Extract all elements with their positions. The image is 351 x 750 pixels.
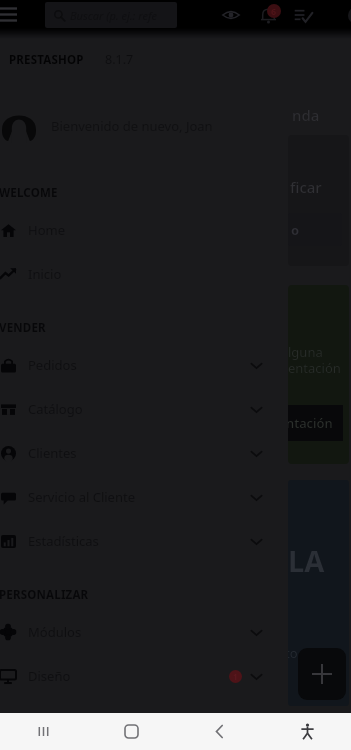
staticText: Home	[28, 221, 65, 239]
button[interactable]: Open navigation menu	[0, 0, 34, 30]
staticText: entación	[288, 359, 341, 377]
staticText: o	[291, 221, 300, 239]
staticText: 1	[233, 671, 238, 682]
button[interactable]: Add	[298, 648, 346, 700]
staticText: ficar	[290, 177, 322, 197]
staticText: nda	[292, 105, 320, 125]
staticText: ntación	[288, 414, 333, 432]
button[interactable]: Diseño	[0, 654, 287, 698]
button[interactable]: Profile	[332, 0, 351, 30]
staticText: 8.1.7	[105, 51, 134, 68]
staticText: 6	[271, 5, 277, 17]
staticText: Diseño	[28, 667, 71, 685]
staticText: lguna	[288, 343, 323, 361]
staticText: PERSONALIZAR	[0, 587, 89, 603]
staticText: WELCOME	[0, 185, 58, 201]
staticText: Clientes	[28, 444, 77, 462]
staticText: PRESTASHOP	[9, 52, 84, 68]
staticText: LA	[288, 541, 325, 580]
button[interactable]: Notifications	[254, 0, 286, 30]
staticText: Módulos	[28, 623, 82, 641]
staticText: Catálogo	[28, 400, 83, 418]
staticText: to	[288, 644, 298, 662]
staticText: Estadísticas	[28, 532, 99, 550]
button[interactable]: Preview store	[213, 0, 248, 30]
button[interactable]: Tasks	[286, 0, 320, 30]
staticText: Servicio al Cliente	[28, 488, 135, 506]
button[interactable]: ntación	[288, 405, 343, 441]
staticText: VENDER	[0, 320, 46, 336]
button[interactable]: Bienvenido de nuevo, Joan	[0, 106, 287, 146]
staticText: Pedidos	[28, 356, 77, 374]
